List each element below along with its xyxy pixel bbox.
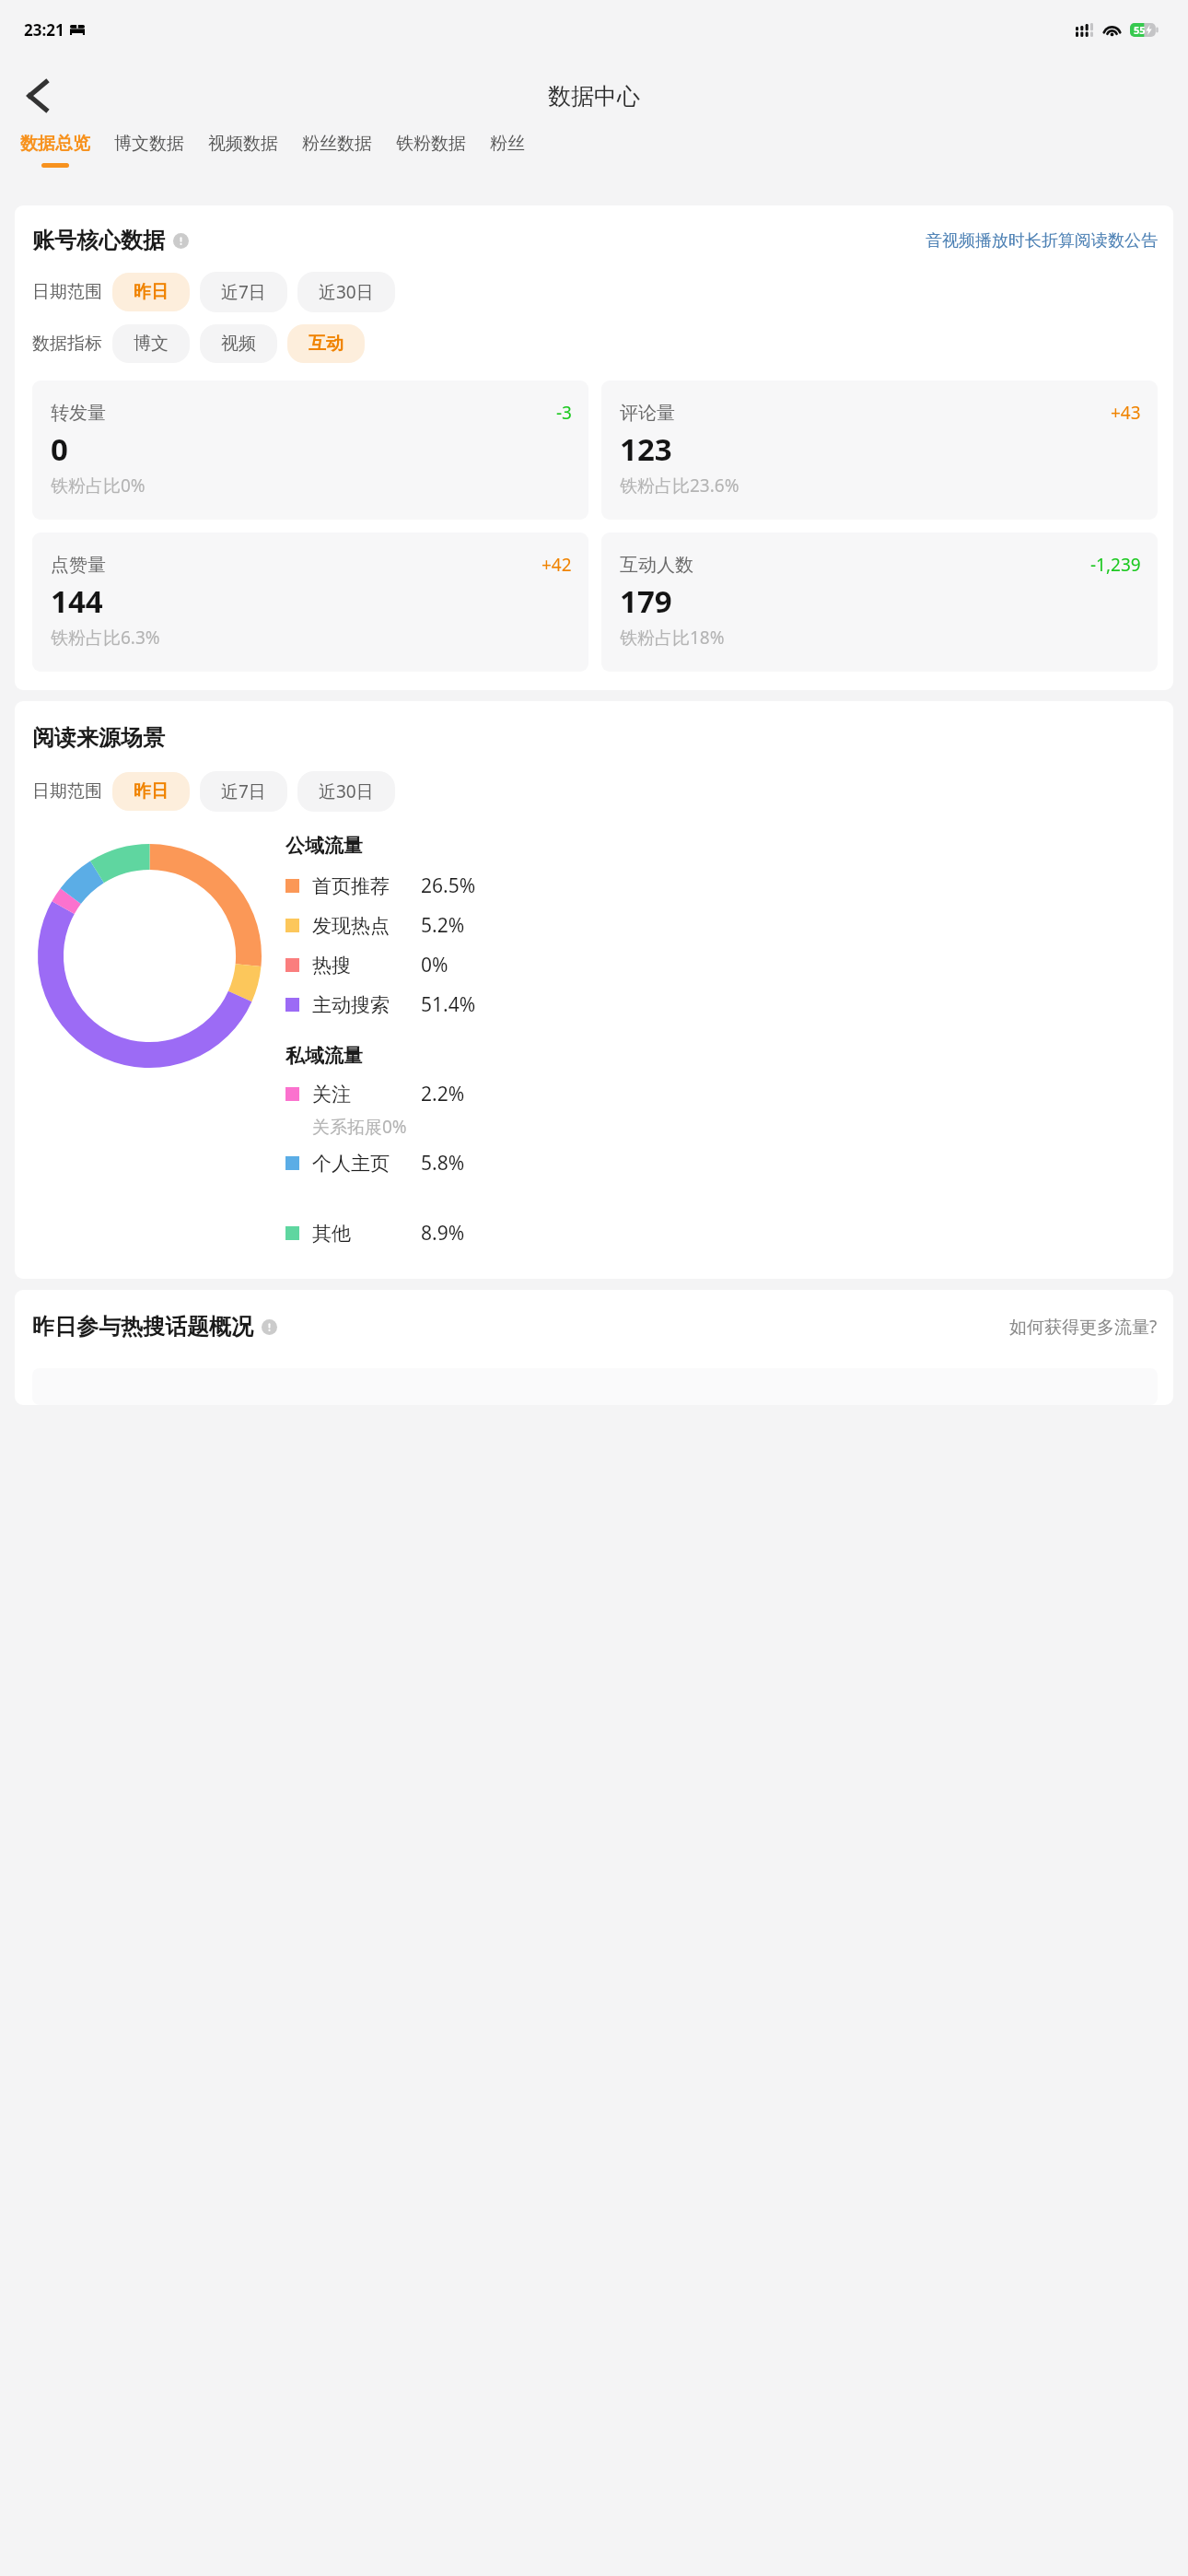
staticText: 评论量 xyxy=(620,402,675,425)
staticText: 铁粉数据 xyxy=(396,133,466,155)
button[interactable]: 互动 xyxy=(287,324,365,363)
staticText: 其他 xyxy=(312,1222,408,1246)
button[interactable]: 视频数据 xyxy=(196,133,290,163)
button[interactable]: 粉丝数据 xyxy=(290,133,384,163)
button[interactable]: 博文 xyxy=(112,324,190,363)
staticText: 音视频播放时长折算阅读数公告 xyxy=(926,230,1158,252)
button[interactable]: 近30日 xyxy=(297,771,395,812)
staticText: 铁粉占比23.6% xyxy=(620,474,740,498)
staticText: 51.4% xyxy=(421,991,476,1018)
staticText: 179 xyxy=(620,580,672,622)
button[interactable]: 音视频播放时长折算阅读数公告 xyxy=(926,230,1158,252)
staticText: 近7日 xyxy=(221,779,266,803)
button[interactable]: 互动人数 xyxy=(601,533,1158,672)
staticText: 如何获得更多流量? xyxy=(1009,1315,1158,1339)
staticText: 粉丝 xyxy=(490,133,525,155)
button[interactable]: 昨日 xyxy=(112,772,190,811)
staticText: 昨日 xyxy=(134,281,169,303)
button[interactable]: 近7日 xyxy=(200,771,287,812)
staticText: +42 xyxy=(542,553,572,577)
staticText: 私域流量 xyxy=(285,1044,363,1068)
staticText: 5.8% xyxy=(421,1150,465,1177)
staticText: 铁粉占比18% xyxy=(620,626,725,650)
button[interactable]: 如何获得更多流量? xyxy=(1009,1315,1158,1339)
staticText: 个人主页 xyxy=(312,1152,408,1176)
staticText: 近7日 xyxy=(221,280,266,304)
staticText: -1,239 xyxy=(1090,553,1141,577)
staticText: 关注 xyxy=(312,1083,408,1107)
staticText: 转发量 xyxy=(51,402,106,425)
staticText: 互动 xyxy=(309,333,344,355)
staticText: 26.5% xyxy=(421,872,476,899)
staticText: 关系拓展0% xyxy=(312,1115,407,1139)
staticText: 0 xyxy=(51,428,68,470)
staticText: 8.9% xyxy=(421,1220,465,1247)
button[interactable]: 视频 xyxy=(200,324,277,363)
button[interactable]: 关注 xyxy=(285,1074,1158,1114)
button[interactable]: 数据总览 xyxy=(8,133,102,168)
staticText: 昨日参与热搜话题概况 xyxy=(32,1313,253,1341)
staticText: 55 xyxy=(1134,23,1146,37)
button[interactable]: Back xyxy=(11,69,64,123)
staticText: 博文数据 xyxy=(114,133,184,155)
staticText: 近30日 xyxy=(319,280,374,304)
staticText: 近30日 xyxy=(319,779,374,803)
staticText: 铁粉占比6.3% xyxy=(51,626,160,650)
staticText: 数据指标 xyxy=(32,333,102,355)
staticText: 铁粉占比0% xyxy=(51,474,146,498)
staticText: 视频数据 xyxy=(208,133,278,155)
button[interactable]: 热搜 xyxy=(285,945,1158,985)
staticText: 博文 xyxy=(134,333,169,355)
staticText: 123 xyxy=(620,428,672,470)
staticText: 144 xyxy=(51,580,103,622)
staticText: 5.2% xyxy=(421,912,465,939)
staticText: 日期范围 xyxy=(32,780,102,802)
button[interactable]: 昨日 xyxy=(112,273,190,311)
staticText: 热搜 xyxy=(312,954,408,978)
button[interactable]: 首页推荐 xyxy=(285,866,1158,906)
staticText: 阅读来源场景 xyxy=(32,724,165,752)
button[interactable]: 评论量 xyxy=(601,381,1158,520)
staticText: 公域流量 xyxy=(285,834,363,858)
button[interactable]: 其他 xyxy=(285,1213,1158,1253)
staticText: 0% xyxy=(421,952,448,978)
staticText: 视频 xyxy=(221,333,256,355)
staticText: 互动人数 xyxy=(620,554,693,577)
staticText: 首页推荐 xyxy=(312,874,408,898)
staticText: 粉丝数据 xyxy=(302,133,372,155)
staticText: 发现热点 xyxy=(312,914,408,938)
staticText: 2.2% xyxy=(421,1081,465,1107)
staticText: 数据中心 xyxy=(548,82,640,111)
button[interactable]: 铁粉数据 xyxy=(384,133,478,163)
staticText: 23:21 xyxy=(24,19,64,41)
button[interactable]: 近7日 xyxy=(200,272,287,312)
staticText: 昨日 xyxy=(134,780,169,802)
staticText: 点赞量 xyxy=(51,554,106,577)
button[interactable]: 个人主页 xyxy=(285,1143,1158,1183)
button[interactable]: 发现热点 xyxy=(285,906,1158,945)
staticText: -3 xyxy=(556,401,572,425)
button[interactable]: 近30日 xyxy=(297,272,395,312)
button[interactable]: 主动搜索 xyxy=(285,985,1158,1025)
button[interactable]: 粉丝 xyxy=(478,133,537,163)
button[interactable]: 博文数据 xyxy=(102,133,196,163)
button[interactable]: 点赞量 xyxy=(32,533,588,672)
staticText: 数据总览 xyxy=(20,133,90,155)
staticText: 账号核心数据 xyxy=(32,227,165,254)
button[interactable]: 转发量 xyxy=(32,381,588,520)
staticText: 日期范围 xyxy=(32,281,102,303)
staticText: 主动搜索 xyxy=(312,993,408,1017)
staticText: +43 xyxy=(1111,401,1141,425)
